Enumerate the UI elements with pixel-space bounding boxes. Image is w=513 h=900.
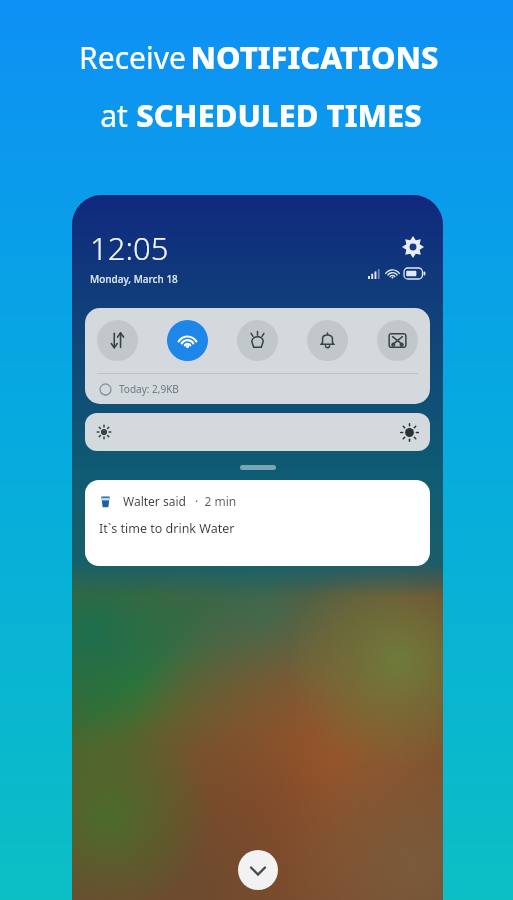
button[interactable]: Drag handle: [240, 465, 276, 470]
staticText: Receive: [75, 37, 190, 78]
button[interactable]: Wi-Fi: [167, 320, 208, 361]
button[interactable]: Collapse: [238, 850, 278, 890]
button[interactable]: Walter said: [85, 480, 430, 566]
button[interactable]: Brightness: [85, 413, 430, 451]
staticText: NOTIFICATIONS: [190, 36, 439, 78]
button[interactable]: Today: 2,9KB: [99, 382, 416, 396]
staticText: SCHEDULED TIMES: [136, 94, 422, 136]
staticText: Walter said: [123, 493, 186, 509]
staticText: Today: 2,9KB: [119, 382, 179, 396]
button[interactable]: Ringer: [307, 320, 348, 361]
button[interactable]: Settings: [401, 235, 425, 259]
button[interactable]: Flashlight: [237, 320, 278, 361]
staticText: 12:05: [90, 227, 169, 269]
staticText: · 2 min: [195, 493, 237, 509]
staticText: It`s time to drink Water: [99, 520, 235, 537]
staticText: Monday, March 18: [90, 272, 178, 286]
button[interactable]: Mobile data: [97, 320, 138, 361]
button[interactable]: Screenshot: [377, 320, 418, 361]
staticText: at: [92, 95, 136, 136]
